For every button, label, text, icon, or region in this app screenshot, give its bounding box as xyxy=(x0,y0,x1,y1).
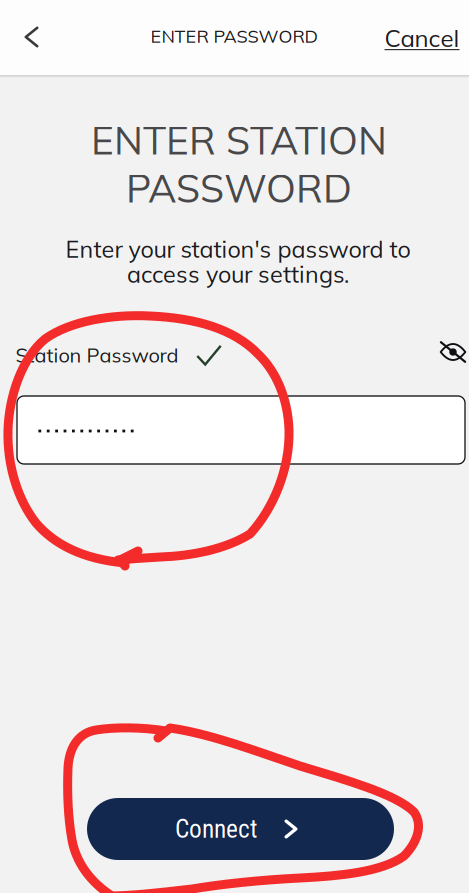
staticText: Enter your station's password to xyxy=(65,234,410,264)
staticText: PASSWORD xyxy=(126,164,352,212)
button[interactable]: Show password xyxy=(431,333,469,371)
staticText: access your settings. xyxy=(127,259,349,289)
staticText: Cancel xyxy=(384,23,459,53)
staticText: Connect xyxy=(175,814,257,844)
button[interactable]: Connect xyxy=(87,798,394,860)
button[interactable]: Back xyxy=(3,9,59,65)
staticText: ENTER PASSWORD xyxy=(150,25,317,47)
staticText: Station Password xyxy=(15,342,178,368)
button[interactable]: Cancel xyxy=(372,12,469,64)
staticText: ENTER STATION xyxy=(91,116,387,164)
